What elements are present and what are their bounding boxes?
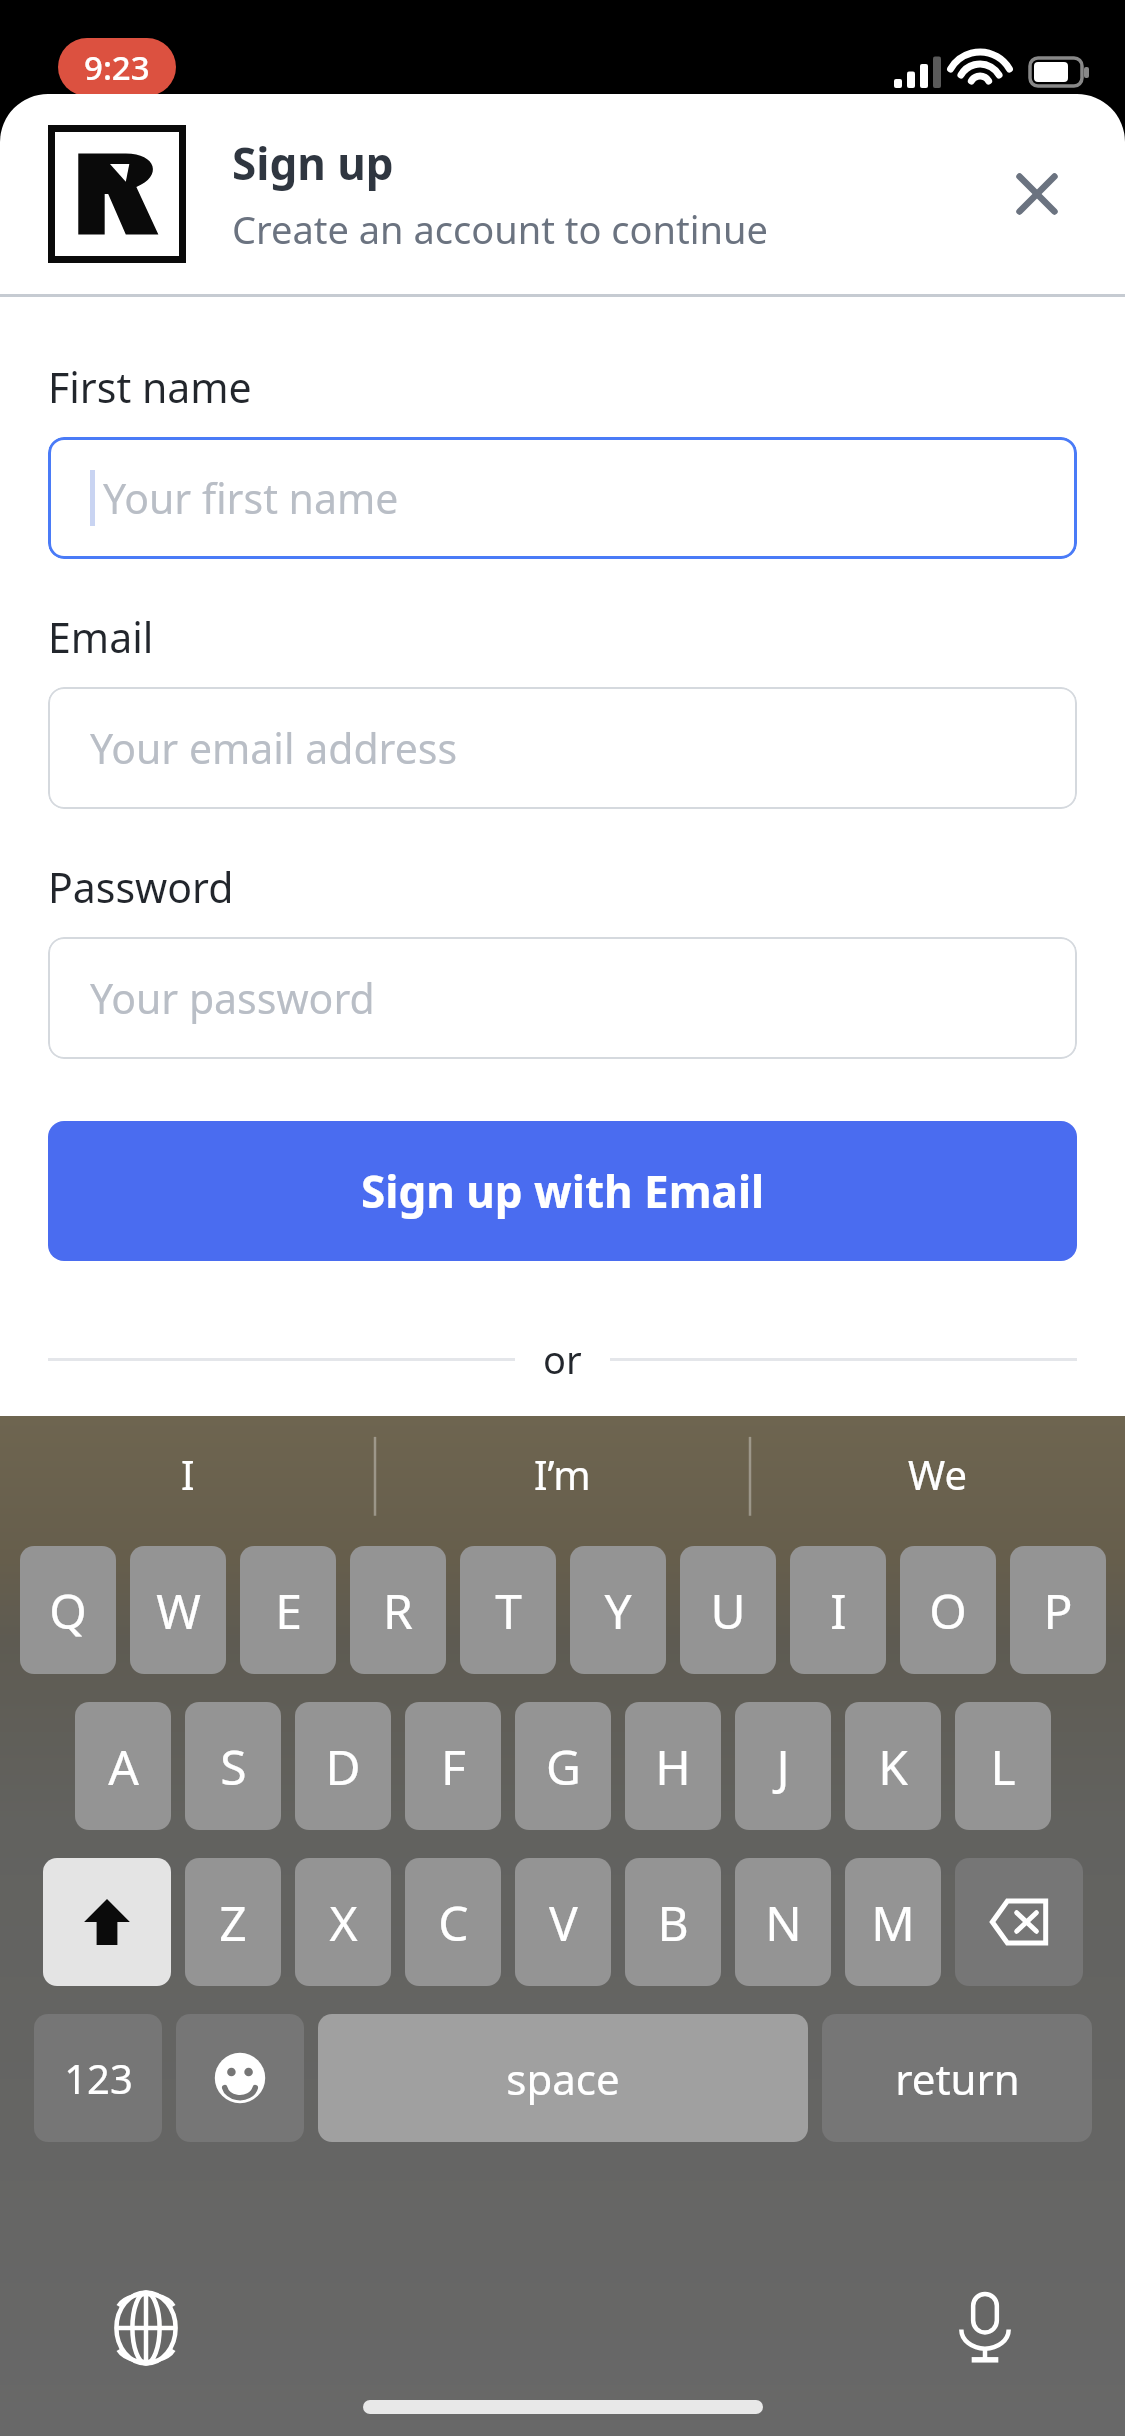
staticText: space — [506, 2050, 620, 2107]
staticText: Email — [48, 609, 154, 665]
staticText: Your password — [90, 970, 375, 1026]
staticText: Sign up with Email — [361, 1161, 765, 1221]
button[interactable]: Your password — [48, 937, 1077, 1059]
staticText: E — [275, 1578, 302, 1643]
staticText: K — [878, 1734, 908, 1799]
staticText: A — [108, 1734, 139, 1799]
button[interactable]: C — [405, 1858, 501, 1986]
staticText: I — [181, 1447, 195, 1501]
button[interactable]: H — [625, 1702, 721, 1830]
button[interactable]: Emoji — [176, 2014, 304, 2142]
button[interactable]: E — [240, 1546, 336, 1674]
staticText: Your email address — [90, 720, 458, 776]
button[interactable]: T — [460, 1546, 556, 1674]
button[interactable]: Y — [570, 1546, 666, 1674]
button[interactable]: O — [900, 1546, 996, 1674]
staticText: C — [438, 1890, 469, 1955]
button[interactable]: Your email address — [48, 687, 1077, 809]
button[interactable]: R — [350, 1546, 446, 1674]
button[interactable]: V — [515, 1858, 611, 1986]
button[interactable]: L — [955, 1702, 1051, 1830]
staticText: D — [325, 1734, 361, 1799]
button[interactable]: 123 — [34, 2014, 162, 2142]
staticText: M — [871, 1890, 915, 1955]
staticText: return — [895, 2050, 1020, 2107]
button[interactable]: Your first name — [48, 437, 1077, 559]
button[interactable]: I — [790, 1546, 886, 1674]
staticText: R — [383, 1578, 413, 1643]
button[interactable]: S — [185, 1702, 281, 1830]
button[interactable]: Shift — [43, 1858, 171, 1986]
button[interactable]: Dictation — [937, 2280, 1033, 2376]
staticText: We — [908, 1447, 967, 1501]
staticText: S — [220, 1734, 247, 1799]
button[interactable]: Q — [20, 1546, 116, 1674]
button[interactable]: Change keyboard language — [98, 2280, 194, 2376]
staticText: T — [495, 1578, 522, 1643]
button[interactable]: M — [845, 1858, 941, 1986]
button[interactable]: U — [680, 1546, 776, 1674]
button[interactable]: A — [75, 1702, 171, 1830]
staticText: or — [543, 1333, 582, 1385]
staticText: L — [990, 1734, 1016, 1799]
staticText: Y — [604, 1578, 632, 1643]
staticText: 123 — [64, 2051, 133, 2105]
staticText: Your first name — [103, 470, 399, 526]
staticText: Z — [219, 1890, 247, 1955]
staticText: H — [655, 1734, 691, 1799]
staticText: N — [765, 1890, 802, 1955]
staticText: 9:23 — [84, 45, 150, 90]
staticText: O — [929, 1578, 967, 1643]
button[interactable]: Backspace — [955, 1858, 1083, 1986]
staticText: X — [329, 1890, 358, 1955]
button[interactable]: Sign up with Email — [48, 1121, 1077, 1261]
staticText: G — [546, 1734, 581, 1799]
button[interactable]: N — [735, 1858, 831, 1986]
button[interactable]: F — [405, 1702, 501, 1830]
button[interactable]: J — [735, 1702, 831, 1830]
button[interactable]: G — [515, 1702, 611, 1830]
button[interactable]: B — [625, 1858, 721, 1986]
staticText: U — [710, 1578, 746, 1643]
staticText: J — [776, 1734, 790, 1799]
staticText: Password — [48, 859, 234, 915]
staticText: Q — [49, 1578, 87, 1643]
staticText: Create an account to continue — [232, 203, 768, 255]
staticText: I’m — [534, 1447, 591, 1501]
staticText: Sign up — [232, 133, 394, 193]
staticText: B — [657, 1890, 689, 1955]
button[interactable]: I — [0, 1416, 375, 1532]
staticText: P — [1043, 1578, 1073, 1643]
button[interactable]: P — [1010, 1546, 1106, 1674]
staticText: I — [830, 1578, 847, 1643]
staticText: W — [156, 1578, 201, 1643]
staticText: First name — [48, 359, 252, 415]
staticText: V — [549, 1890, 578, 1955]
button[interactable]: Close — [989, 146, 1085, 242]
button[interactable]: W — [130, 1546, 226, 1674]
staticText: F — [441, 1734, 466, 1799]
button[interactable]: return — [822, 2014, 1092, 2142]
button[interactable]: Z — [185, 1858, 281, 1986]
button[interactable]: We — [750, 1416, 1125, 1532]
button[interactable]: X — [295, 1858, 391, 1986]
button[interactable]: K — [845, 1702, 941, 1830]
button[interactable]: I’m — [375, 1416, 750, 1532]
button[interactable]: D — [295, 1702, 391, 1830]
button[interactable]: space — [318, 2014, 808, 2142]
